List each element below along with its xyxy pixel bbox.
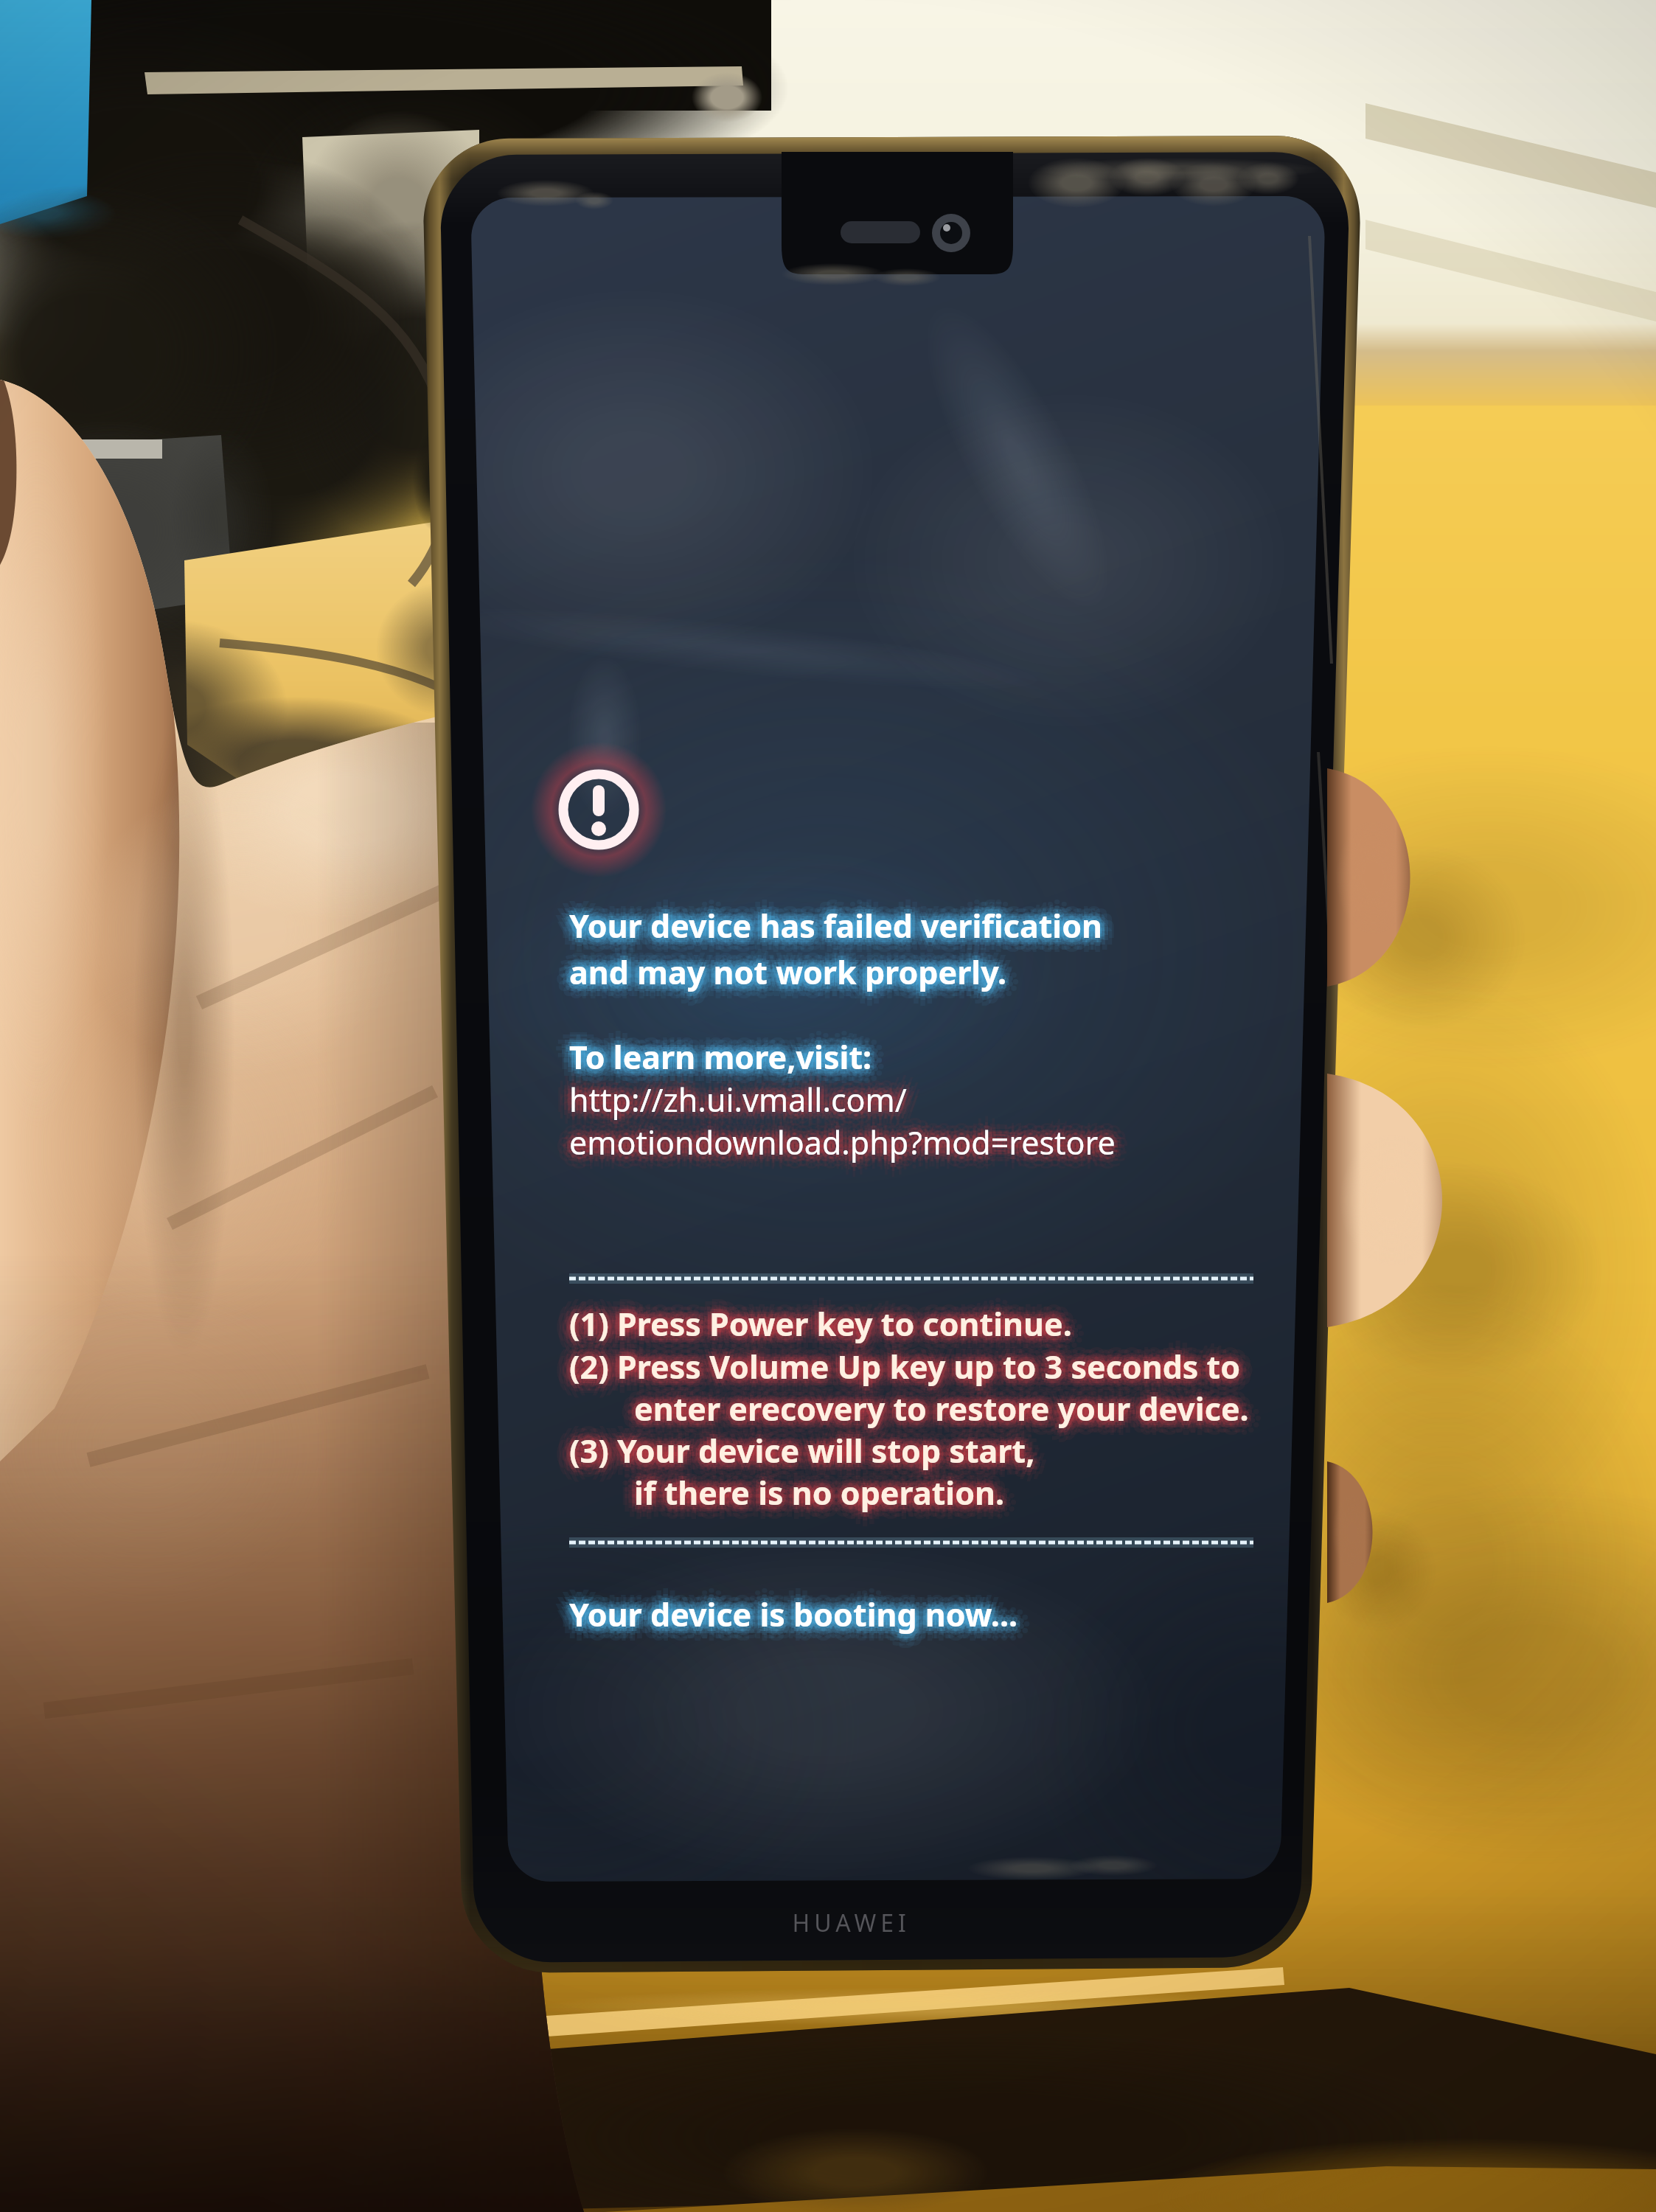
button[interactable]: Phone showing a device failed verificati… bbox=[0, 0, 1656, 2212]
